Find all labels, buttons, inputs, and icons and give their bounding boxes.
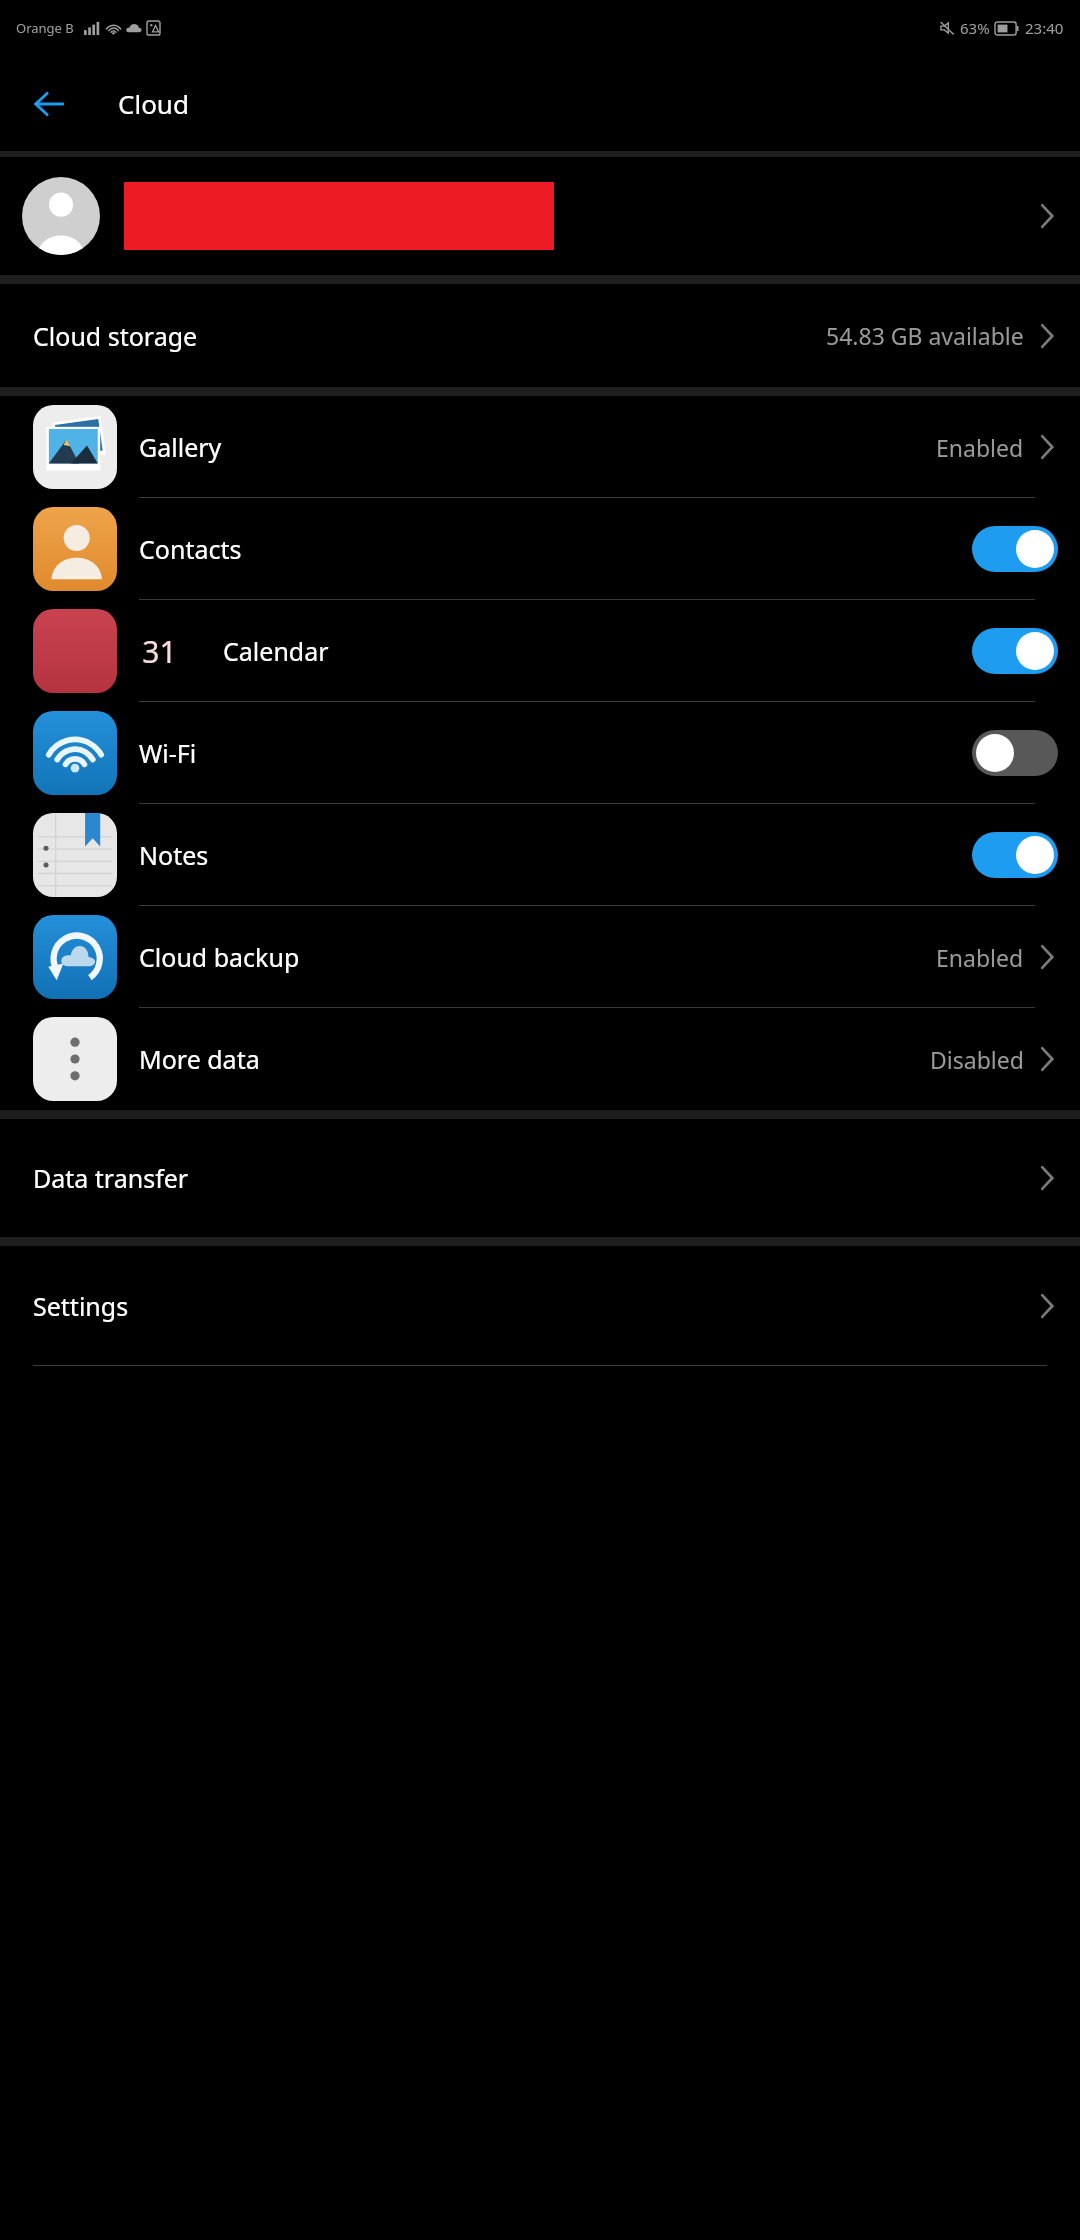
button[interactable]: Off [972, 730, 1058, 776]
staticText: Enabled [936, 432, 1024, 463]
button[interactable]: On [972, 628, 1058, 674]
staticText: More data [139, 1042, 260, 1076]
staticText: 31 [142, 631, 177, 672]
staticText: Cloud storage [33, 319, 198, 353]
button[interactable]: On [972, 526, 1058, 572]
staticText: Disabled [930, 1044, 1024, 1075]
staticText: Gallery [139, 430, 222, 464]
staticText: Orange B [16, 19, 74, 37]
button[interactable]: Gallery [0, 396, 1080, 498]
staticText: Enabled [936, 942, 1024, 973]
button[interactable] [0, 157, 1080, 275]
button[interactable]: Data transfer [0, 1119, 1080, 1237]
staticText: 63% [960, 18, 990, 38]
button[interactable]: Cloud storage [0, 284, 1080, 387]
staticText: Data transfer [33, 1161, 189, 1195]
staticText: Settings [33, 1289, 129, 1323]
button[interactable]: Settings [0, 1246, 1080, 1366]
button[interactable]: Wi-Fi [0, 702, 1080, 804]
staticText: 23:40 [1025, 18, 1064, 38]
button[interactable]: Cloud backup [0, 906, 1080, 1008]
staticText: Wi-Fi [139, 736, 197, 770]
button[interactable]: Contacts [0, 498, 1080, 600]
staticText: Contacts [139, 532, 242, 566]
staticText: Cloud backup [139, 940, 300, 974]
button[interactable]: On [972, 832, 1058, 878]
button[interactable]: More data [0, 1008, 1080, 1110]
staticText: Calendar [223, 634, 329, 668]
button[interactable]: Back [18, 73, 80, 135]
button[interactable]: Notes [0, 804, 1080, 906]
staticText: 54.83 GB available [826, 320, 1024, 351]
staticText: Cloud [118, 86, 189, 121]
button[interactable]: 31 [0, 600, 1080, 702]
staticText: Notes [139, 838, 209, 872]
